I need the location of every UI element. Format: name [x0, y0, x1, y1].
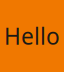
staticText: Hello	[4, 21, 60, 51]
